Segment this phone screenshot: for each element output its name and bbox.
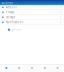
button[interactable]: Privacy — [0, 10, 64, 15]
staticText: Add account — [11, 29, 20, 31]
button[interactable]: Home — [0, 64, 13, 72]
staticText: Privacy — [6, 10, 14, 14]
staticText: Settings — [1, 1, 12, 4]
button[interactable]: Search — [13, 64, 26, 72]
button[interactable]: Alerts — [38, 64, 51, 72]
button[interactable]: Notifications — [0, 20, 64, 25]
button[interactable]: Add — [26, 64, 38, 72]
button[interactable]: Account — [0, 5, 64, 10]
staticText: Notifications — [6, 20, 23, 24]
button[interactable]: Add account — [0, 27, 64, 32]
staticText: Account — [6, 5, 17, 9]
button[interactable]: Profile — [51, 64, 64, 72]
staticText: Storage — [6, 15, 16, 19]
button[interactable]: Storage — [0, 15, 64, 20]
